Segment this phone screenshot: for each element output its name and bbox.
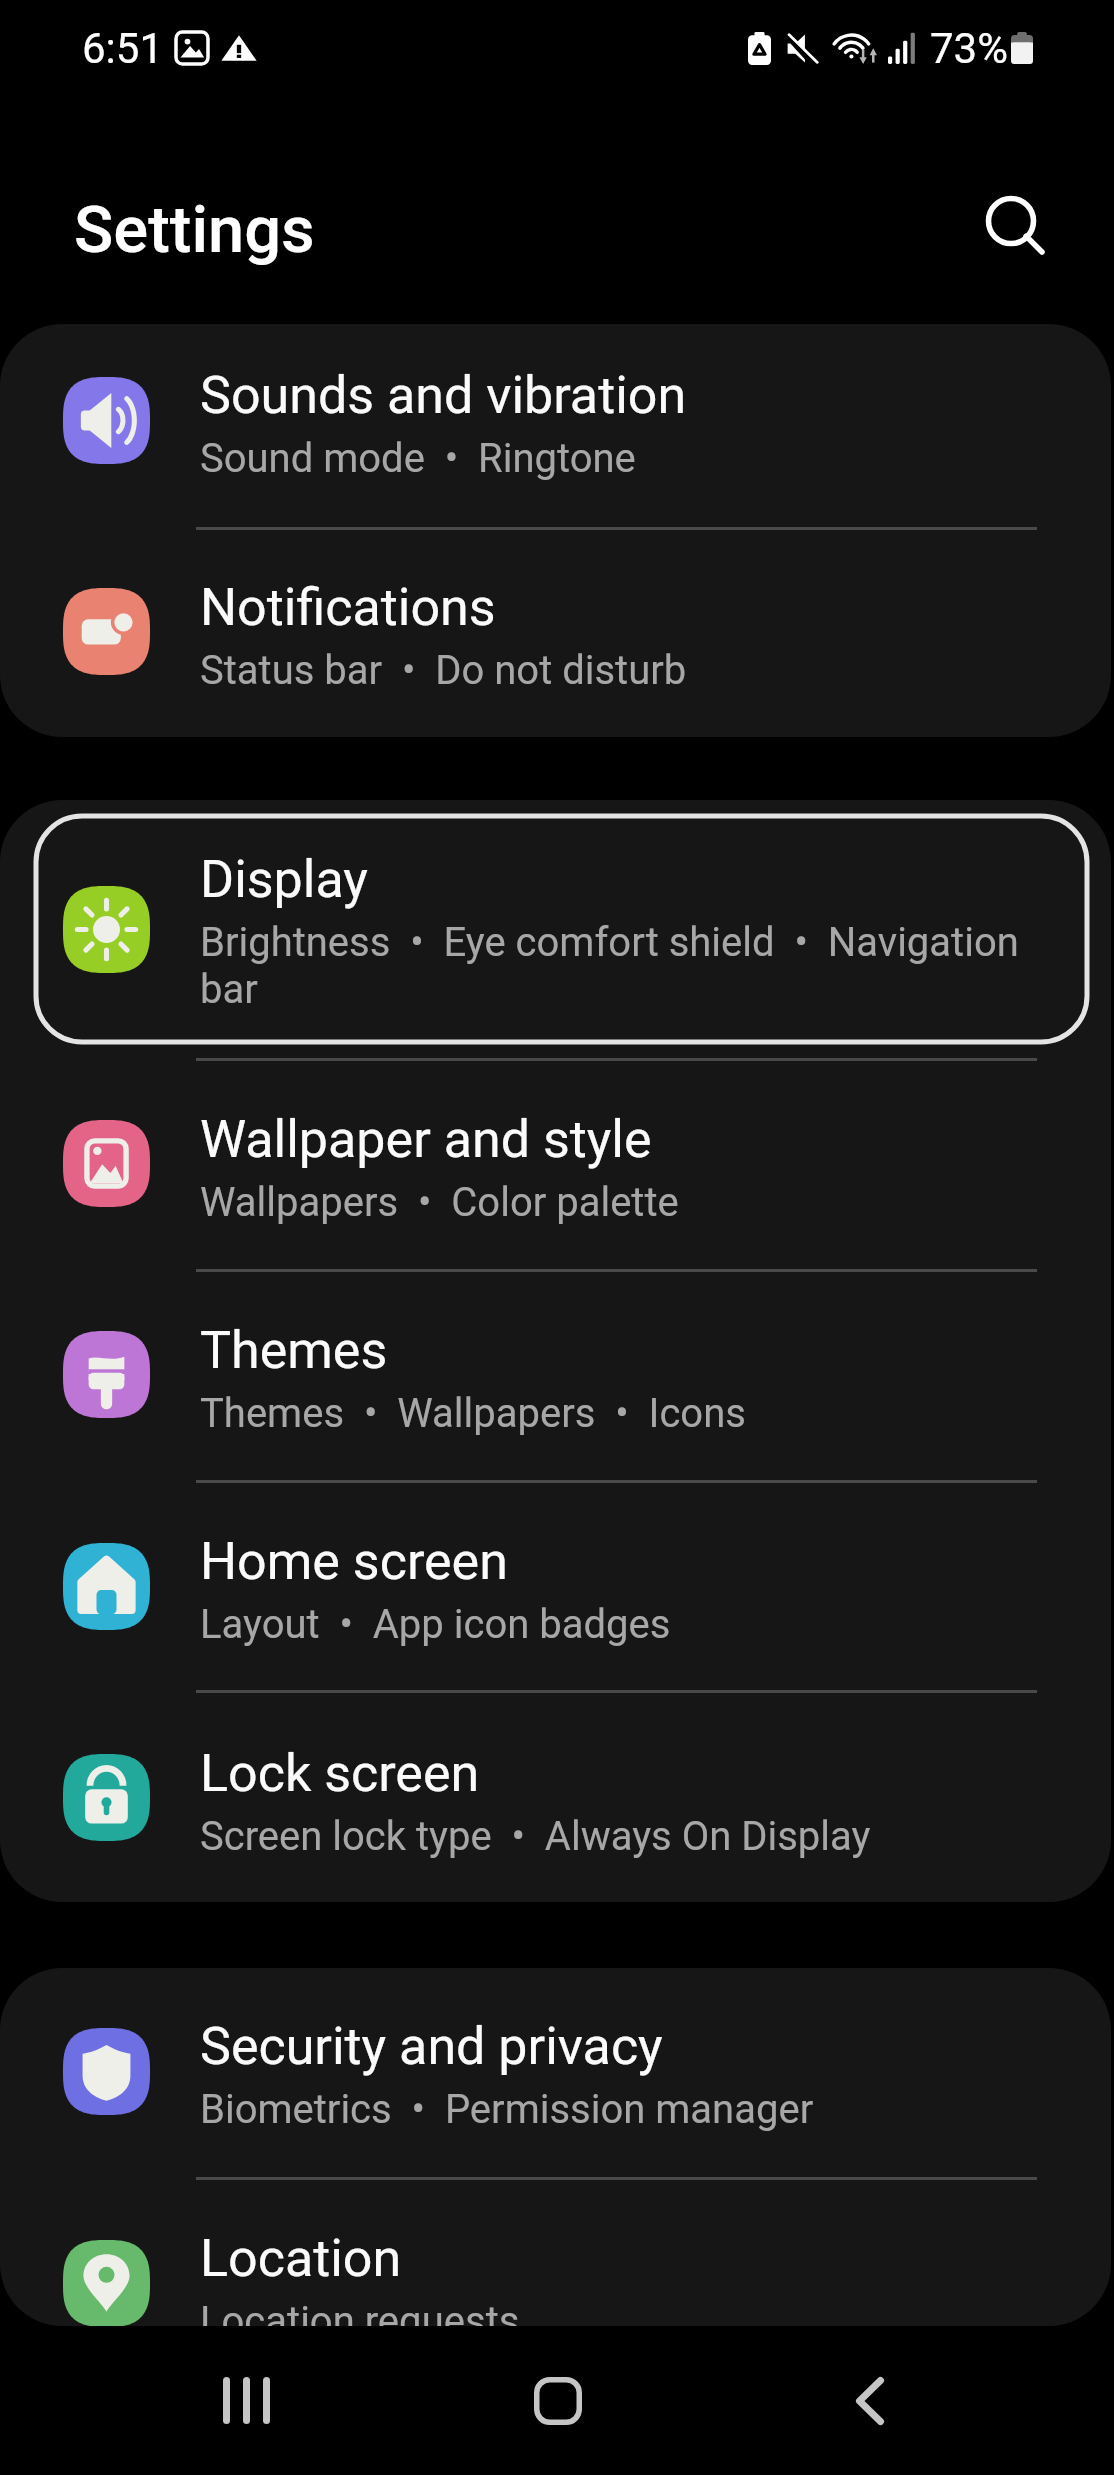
staticText: Screen lock type • Always On Display xyxy=(200,1813,871,1860)
staticText: Sounds and vibration xyxy=(200,365,687,426)
button[interactable]: Search xyxy=(963,173,1059,269)
button[interactable] xyxy=(0,1966,1114,2177)
button[interactable] xyxy=(0,527,1114,738)
button[interactable] xyxy=(0,1059,1114,1270)
staticText: Wallpapers • Color palette xyxy=(200,1179,679,1226)
button[interactable] xyxy=(0,799,1114,1058)
staticText: Lock screen xyxy=(200,1743,480,1804)
button[interactable] xyxy=(0,1270,1114,1481)
button[interactable]: Back xyxy=(792,2326,948,2475)
staticText: Themes xyxy=(200,1320,388,1381)
staticText: Settings xyxy=(74,192,315,268)
button[interactable] xyxy=(0,2178,1114,2326)
button[interactable] xyxy=(0,1481,1114,1692)
staticText: Wallpaper and style xyxy=(200,1109,652,1170)
staticText: Security and privacy xyxy=(200,2016,663,2077)
staticText: Status bar • Do not disturb xyxy=(200,647,687,694)
staticText: Sound mode • Ringtone xyxy=(200,435,636,482)
staticText: Layout • App icon badges xyxy=(200,1601,671,1648)
button[interactable] xyxy=(0,1693,1114,1904)
staticText: Display xyxy=(200,849,368,910)
staticText: Home screen xyxy=(200,1531,508,1592)
staticText: 6:51 xyxy=(82,24,163,73)
staticText: 73% xyxy=(930,24,1008,73)
staticText: Notifications xyxy=(200,577,496,638)
staticText: Themes • Wallpapers • Icons xyxy=(200,1390,746,1437)
staticText: Location xyxy=(200,2228,402,2289)
staticText: Brightness • Eye comfort shield • Naviga… xyxy=(200,919,1042,1013)
staticText: Biometrics • Permission manager xyxy=(200,2086,814,2133)
button[interactable] xyxy=(0,315,1114,526)
button[interactable]: Home xyxy=(480,2326,636,2475)
button[interactable]: Recents xyxy=(168,2326,324,2475)
staticText: Location requests xyxy=(200,2298,520,2326)
